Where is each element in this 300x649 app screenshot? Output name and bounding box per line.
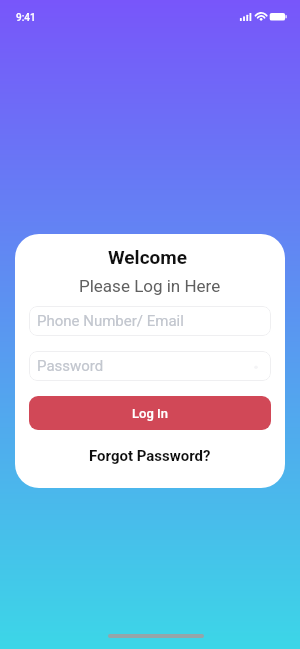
- other: Battery: [269, 12, 288, 22]
- button[interactable]: Forgot Password?: [81, 444, 219, 468]
- button[interactable]: Password: [29, 351, 271, 381]
- staticText: Welcome: [108, 246, 187, 268]
- staticText: Password: [37, 357, 104, 375]
- button[interactable]: Log In: [29, 396, 271, 430]
- staticText: Log In: [132, 406, 168, 421]
- staticText: 9:41: [16, 12, 36, 24]
- button[interactable]: Phone Number/ Email: [29, 306, 271, 336]
- staticText: Please Log in Here: [79, 276, 221, 296]
- other: Cellular signal: [239, 13, 251, 22]
- staticText: Phone Number/ Email: [37, 312, 184, 330]
- other: Wi-Fi: [253, 11, 269, 23]
- staticText: Forgot Password?: [89, 447, 211, 465]
